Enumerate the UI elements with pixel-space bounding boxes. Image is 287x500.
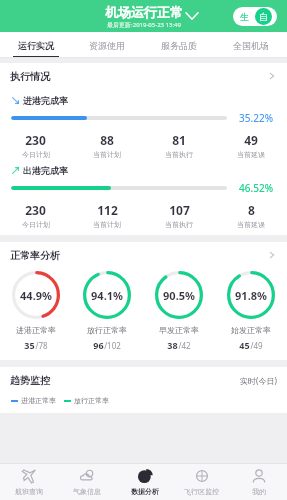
staticText: /102 <box>104 340 121 351</box>
staticText: 放行正常率 <box>87 325 127 335</box>
staticText: 实时(今日) <box>240 375 277 386</box>
staticText: 112 <box>97 202 118 218</box>
staticText: 当前计划 <box>93 220 121 229</box>
staticText: 正常率分析 <box>10 249 60 262</box>
staticText: 生 <box>240 11 249 22</box>
staticText: 今日计划 <box>22 220 50 229</box>
button[interactable]: 91.8% <box>215 270 287 351</box>
staticText: 气象信息 <box>73 487 101 496</box>
staticText: 91.8% <box>235 288 267 303</box>
staticText: 49 <box>244 132 258 148</box>
staticText: 全国机场 <box>233 40 269 51</box>
staticText: /49 <box>250 340 263 351</box>
staticText: 当前执行 <box>165 220 193 229</box>
staticText: 81 <box>172 132 186 148</box>
staticText: 45 <box>239 339 250 351</box>
staticText: 38 <box>167 339 178 351</box>
button[interactable]: 我的 <box>230 463 287 500</box>
staticText: 航班查询 <box>15 487 43 496</box>
staticText: 飞行区监控 <box>184 487 219 496</box>
staticText: 90.5% <box>163 288 195 303</box>
staticText: 88 <box>100 132 114 148</box>
button[interactable]: 正常率分析 <box>0 242 287 268</box>
button[interactable]: 趋势监控 <box>0 367 287 393</box>
staticText: 当前延误 <box>237 150 265 159</box>
button[interactable]: 展开 <box>182 6 202 26</box>
staticText: 96 <box>93 339 104 351</box>
staticText: 数据分析 <box>131 487 159 496</box>
staticText: 今日计划 <box>22 150 50 159</box>
staticText: 进港完成率 <box>23 95 68 106</box>
staticText: 资源使用 <box>89 40 125 51</box>
staticText: 最后更新:2019-05-23 13:49 <box>107 21 181 29</box>
staticText: 107 <box>169 202 190 218</box>
staticText: 当前计划 <box>93 150 121 159</box>
staticText: /78 <box>35 340 48 351</box>
button[interactable]: 执行情况 <box>0 63 287 89</box>
button[interactable]: 44.9% <box>0 270 71 351</box>
staticText: 服务品质 <box>161 40 197 51</box>
staticText: 当前延误 <box>237 220 265 229</box>
staticText: 放行正常率 <box>74 396 109 405</box>
staticText: 230 <box>25 132 46 148</box>
staticText: 进港正常率 <box>16 325 56 335</box>
staticText: 94.1% <box>91 288 123 303</box>
button[interactable]: 飞行区监控 <box>173 463 230 500</box>
staticText: 46.52% <box>239 181 273 195</box>
staticText: 我的 <box>252 487 266 496</box>
staticText: 35 <box>24 339 35 351</box>
staticText: 早发正常率 <box>159 325 199 335</box>
staticText: 44.9% <box>20 288 52 303</box>
staticText: 8 <box>248 202 255 218</box>
staticText: 趋势监控 <box>10 374 50 387</box>
button[interactable]: 航班查询 <box>0 463 58 500</box>
button[interactable]: 生 <box>233 7 277 26</box>
staticText: 进港正常率 <box>21 396 56 405</box>
staticText: 35.22% <box>239 111 273 125</box>
button[interactable]: 90.5% <box>143 270 215 351</box>
button[interactable]: 服务品质 <box>143 32 215 58</box>
button[interactable]: 94.1% <box>71 270 143 351</box>
staticText: 自 <box>259 11 268 22</box>
staticText: 始发正常率 <box>231 325 271 335</box>
button[interactable]: 气象信息 <box>58 463 116 500</box>
staticText: 执行情况 <box>10 70 50 83</box>
staticText: 运行实况 <box>18 40 54 51</box>
staticText: 出港完成率 <box>23 165 68 176</box>
staticText: 当前执行 <box>165 150 193 159</box>
staticText: /42 <box>178 340 191 351</box>
button[interactable]: 数据分析 <box>116 463 173 500</box>
button[interactable]: 资源使用 <box>71 32 143 58</box>
button[interactable]: 全国机场 <box>215 32 287 58</box>
staticText: 230 <box>25 202 46 218</box>
staticText: 机场运行正常 <box>105 4 183 20</box>
button[interactable]: 运行实况 <box>0 32 71 58</box>
